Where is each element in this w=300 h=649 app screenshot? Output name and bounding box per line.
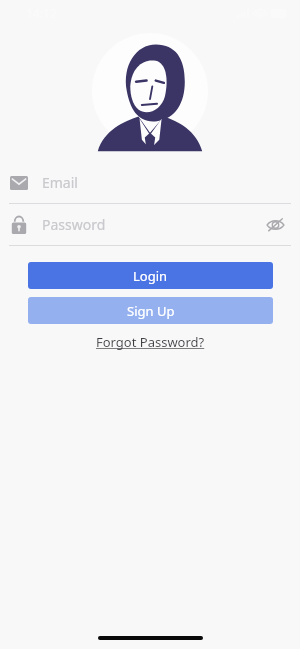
- button[interactable]: Password: [0, 204, 300, 245]
- staticText: Email: [42, 173, 78, 192]
- button[interactable]: Login: [28, 262, 273, 289]
- button[interactable]: Sign Up: [28, 297, 273, 324]
- staticText: Login: [133, 267, 168, 285]
- button[interactable]: Email: [0, 162, 300, 203]
- button[interactable]: Forgot Password?: [88, 331, 213, 353]
- staticText: Password: [42, 215, 106, 234]
- button[interactable]: Show password: [262, 212, 288, 238]
- staticText: Sign Up: [127, 302, 175, 320]
- staticText: Forgot Password?: [96, 333, 205, 351]
